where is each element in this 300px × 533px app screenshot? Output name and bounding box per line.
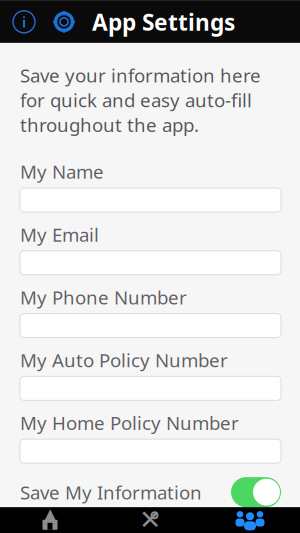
staticText: ▲ [43, 504, 57, 525]
staticText: My Home Policy Number [20, 410, 239, 435]
staticText: My Phone Number [20, 285, 187, 310]
staticText: My Auto Policy Number [20, 348, 228, 372]
button[interactable]: Settings [200, 507, 300, 533]
staticText: ✕ [139, 505, 161, 533]
staticText: Save your information here for quick and… [20, 63, 261, 137]
button[interactable]: Settings [44, 1, 84, 43]
staticText: My Name [20, 159, 104, 184]
button[interactable]: Save My Information [231, 477, 281, 507]
staticText: Save My Information [20, 480, 202, 505]
button[interactable]: Information [4, 1, 44, 43]
button[interactable]: ✕ [100, 507, 200, 533]
staticText: App Settings [92, 7, 235, 37]
staticText: My Email [20, 222, 99, 247]
button[interactable]: ▲ [0, 507, 100, 533]
